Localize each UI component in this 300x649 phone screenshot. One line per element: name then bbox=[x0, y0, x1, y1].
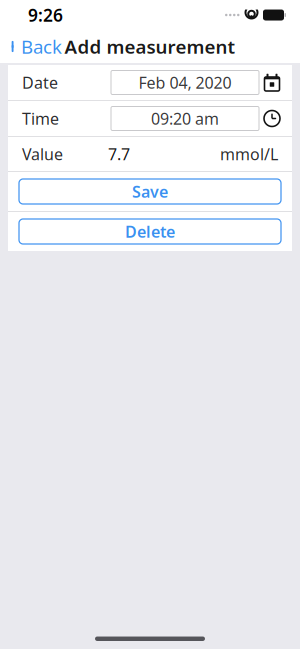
staticText: Back bbox=[21, 34, 62, 59]
staticText: Add measurement bbox=[64, 34, 235, 59]
staticText: Date bbox=[22, 72, 58, 93]
staticText: mmol/L bbox=[220, 143, 278, 165]
button[interactable]: Save bbox=[19, 179, 281, 204]
staticText: 09:20 am bbox=[151, 108, 219, 129]
staticText: Time bbox=[22, 108, 59, 129]
button[interactable]: Back bbox=[0, 28, 70, 65]
staticText: Save bbox=[132, 181, 168, 202]
button[interactable]: Pick time bbox=[259, 101, 285, 135]
staticText: 9:26 bbox=[28, 3, 63, 26]
button[interactable]: Pick date bbox=[259, 65, 285, 99]
staticText: Delete bbox=[125, 221, 175, 242]
button[interactable]: Delete bbox=[19, 219, 281, 244]
staticText: Feb 04, 2020 bbox=[138, 72, 231, 93]
staticText: Value bbox=[22, 143, 63, 165]
staticText: 7.7 bbox=[108, 143, 130, 165]
